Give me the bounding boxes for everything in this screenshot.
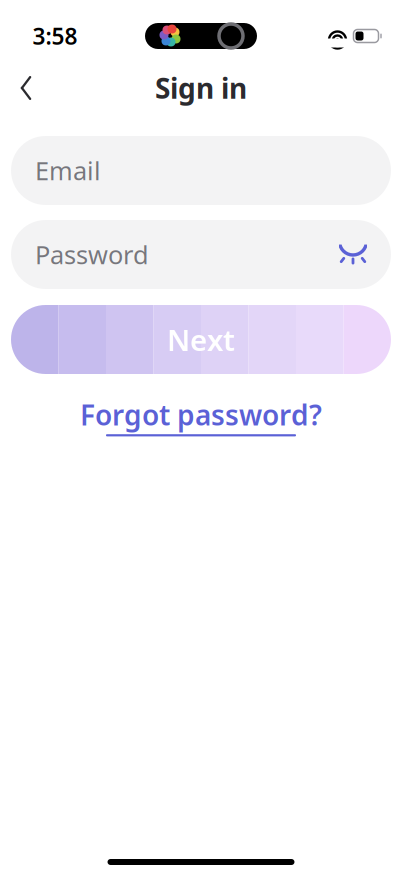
- staticText: Next: [167, 320, 235, 359]
- button[interactable]: Email: [11, 136, 391, 205]
- button[interactable]: Back: [4, 66, 48, 110]
- button[interactable]: Password: [11, 220, 391, 289]
- staticText: Email: [35, 154, 101, 187]
- staticText: 3:58: [32, 21, 77, 51]
- button[interactable]: Next: [11, 305, 391, 374]
- staticText: Forgot password?: [80, 396, 322, 433]
- button[interactable]: Forgot password?: [64, 390, 338, 442]
- staticText: Sign in: [155, 69, 247, 107]
- staticText: Password: [35, 238, 149, 271]
